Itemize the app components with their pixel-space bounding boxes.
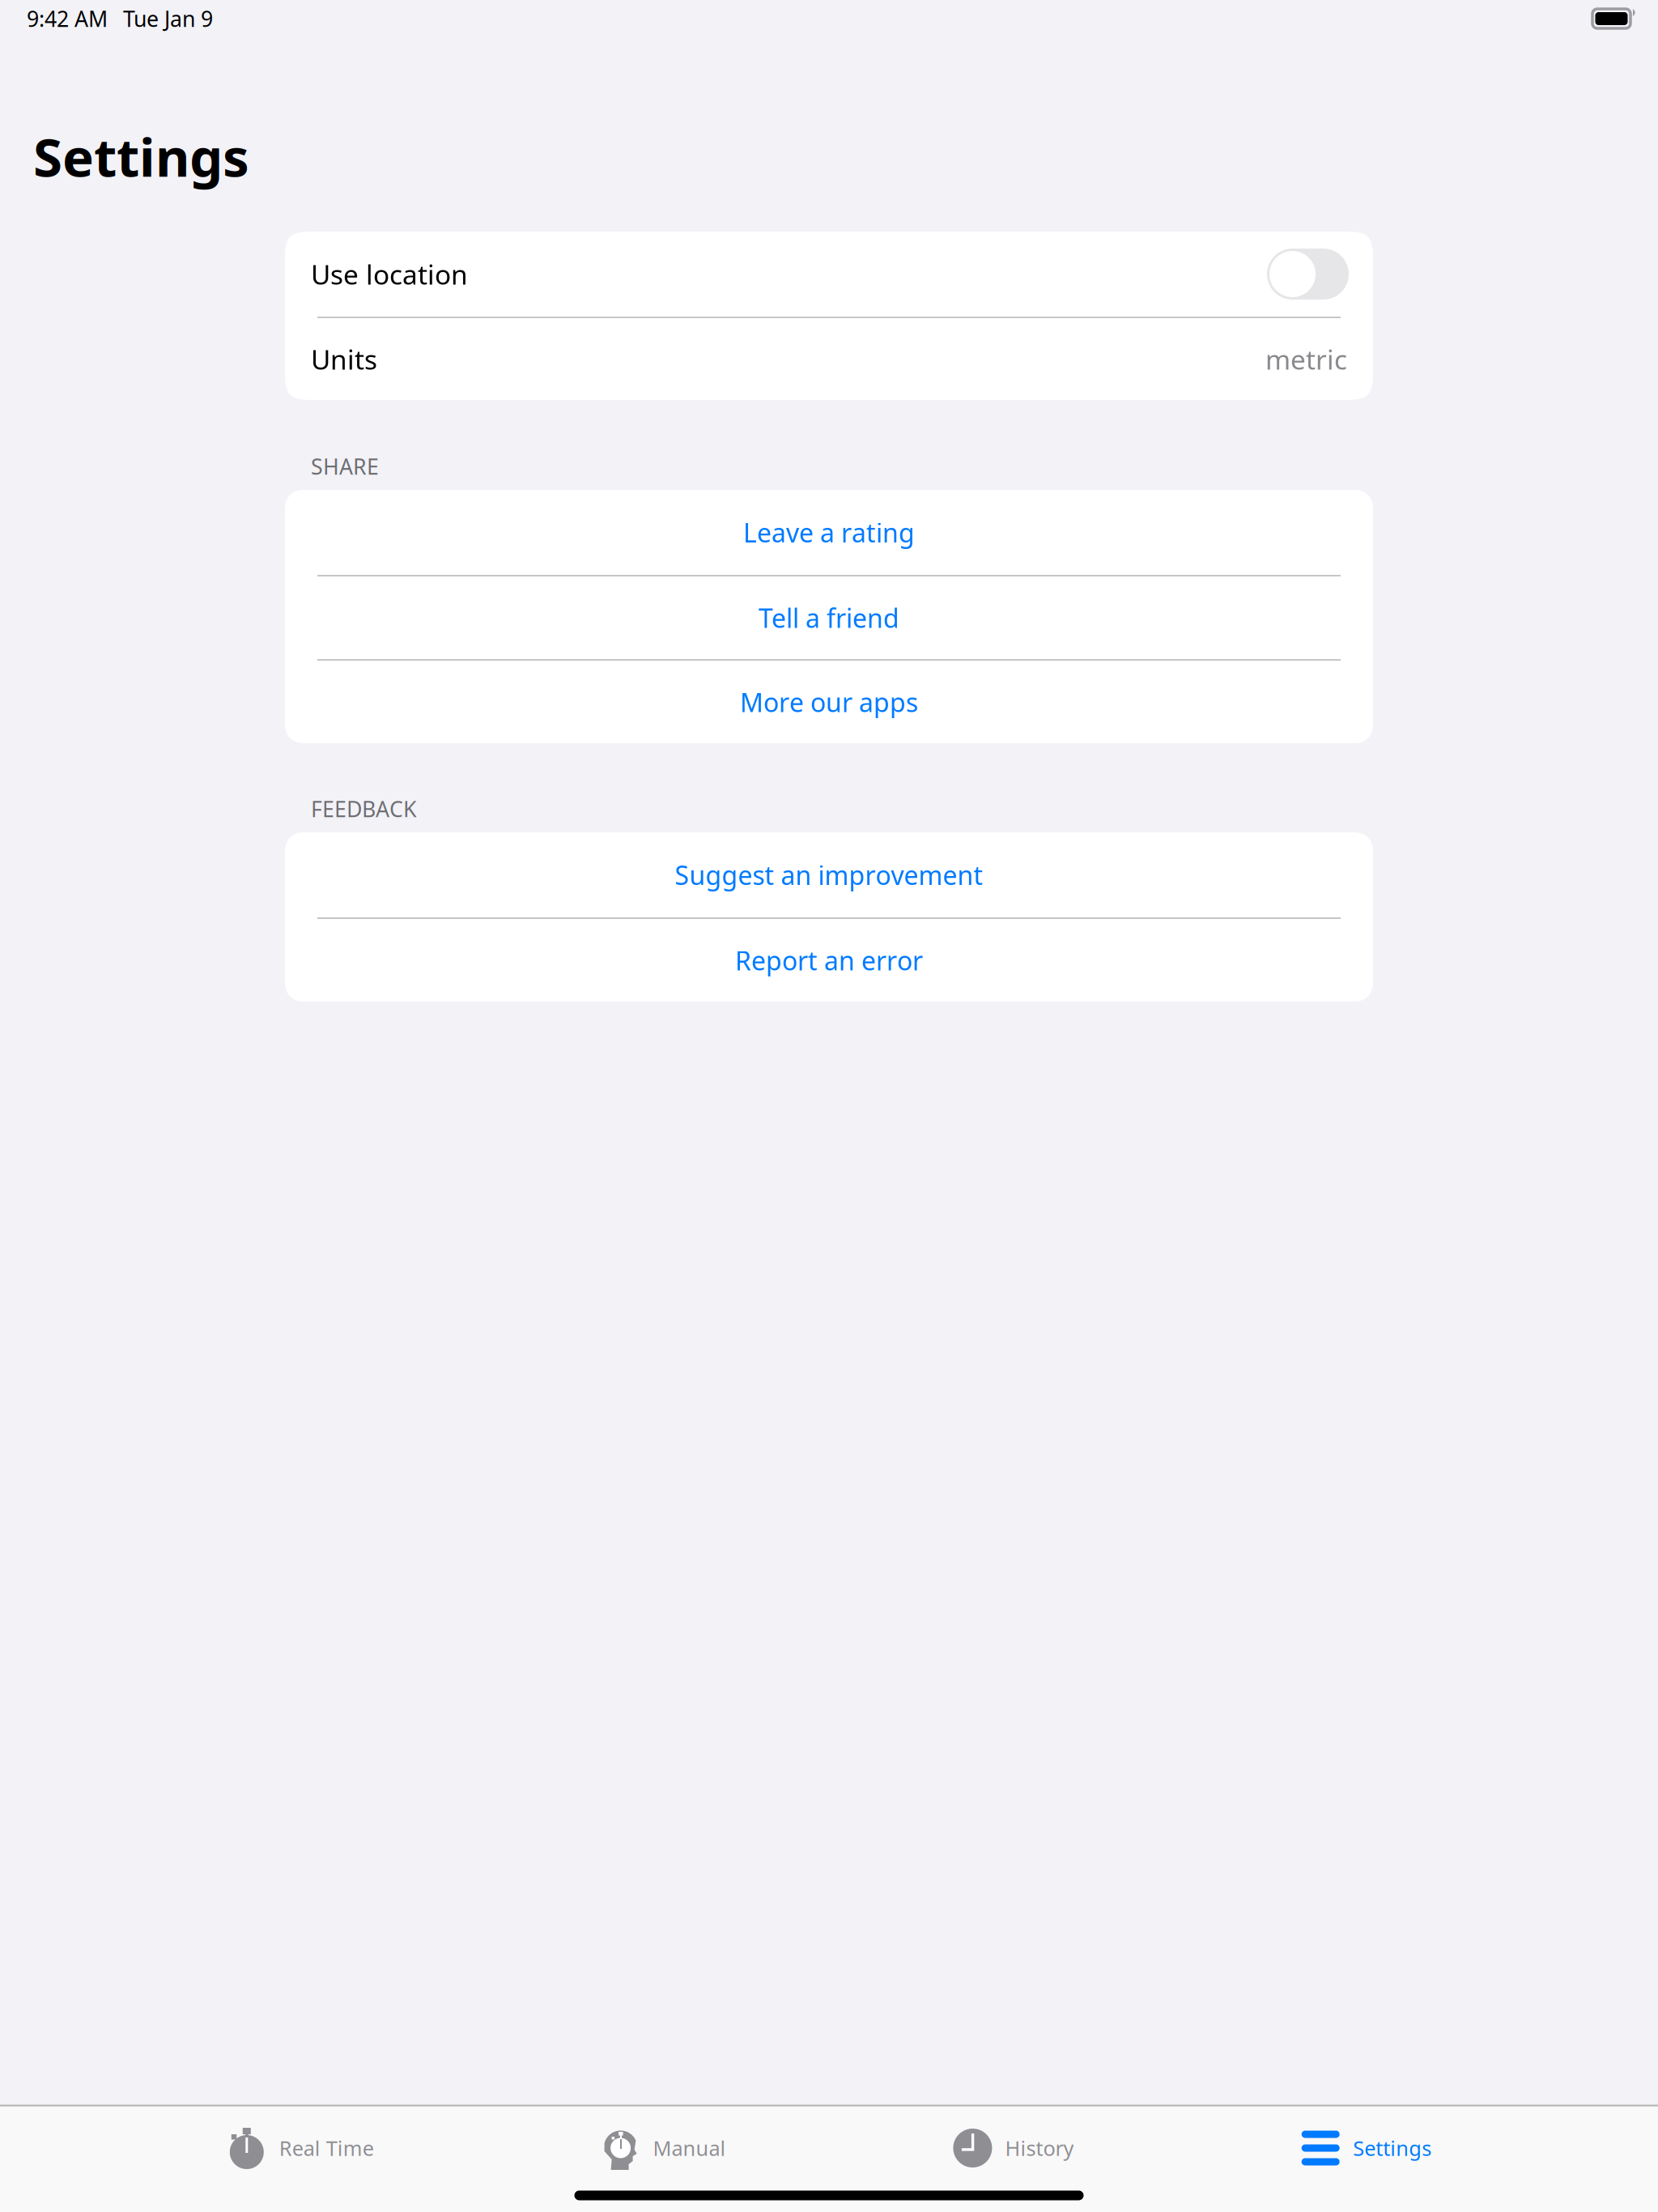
button[interactable]: Report an error: [285, 919, 1373, 1002]
staticText: Tell a friend: [759, 601, 899, 635]
staticText: Settings: [1353, 2134, 1431, 2162]
button[interactable]: Use location: [285, 232, 1373, 317]
staticText: Settings: [33, 121, 249, 191]
staticText: Report an error: [735, 943, 923, 978]
staticText: metric: [1265, 341, 1347, 377]
staticText: 9:42 AM: [27, 4, 108, 33]
staticText: Leave a rating: [743, 515, 915, 550]
staticText: History: [1005, 2134, 1074, 2162]
staticText: Manual: [653, 2134, 726, 2162]
button[interactable]: Tell a friend: [285, 576, 1373, 659]
staticText: SHARE: [311, 452, 379, 481]
button[interactable]: History: [952, 2106, 1074, 2190]
button[interactable]: Real Time: [227, 2106, 374, 2190]
button[interactable]: More our apps: [285, 661, 1373, 743]
staticText: Suggest an improvement: [675, 858, 983, 892]
staticText: Use location: [311, 256, 468, 292]
button[interactable]: Manual: [600, 2106, 726, 2190]
staticText: Tue Jan 9: [123, 4, 213, 33]
staticText: More our apps: [740, 685, 918, 719]
button[interactable]: Units: [285, 318, 1373, 400]
staticText: Real Time: [279, 2134, 374, 2162]
button[interactable]: Leave a rating: [285, 490, 1373, 575]
button[interactable]: Suggest an improvement: [285, 832, 1373, 917]
staticText: Units: [311, 341, 377, 377]
staticText: FEEDBACK: [311, 795, 417, 823]
button[interactable]: Settings: [1300, 2106, 1431, 2190]
